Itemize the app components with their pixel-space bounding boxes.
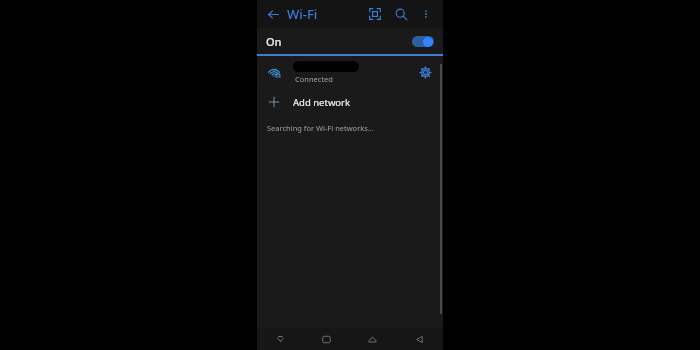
button[interactable]: Hide keyboard [257, 328, 303, 350]
button[interactable]: Recent apps [303, 328, 349, 350]
button[interactable]: More options [417, 5, 435, 23]
staticText: Searching for Wi-Fi networks... [267, 123, 374, 133]
button[interactable]: Back [396, 328, 443, 350]
button[interactable]: Search [391, 4, 411, 24]
button[interactable]: Home [349, 328, 396, 350]
button[interactable]: On [257, 28, 443, 54]
button[interactable]: Scan QR code [365, 4, 385, 24]
staticText: Wi-Fi [287, 5, 318, 23]
button[interactable]: Back [265, 6, 281, 22]
button[interactable]: Network settings [416, 63, 434, 81]
staticText: Add network [293, 96, 351, 109]
button[interactable]: Add network [257, 88, 443, 116]
staticText: Connected [295, 74, 333, 84]
staticText: On [266, 34, 282, 49]
button[interactable]: Connected [257, 56, 443, 88]
